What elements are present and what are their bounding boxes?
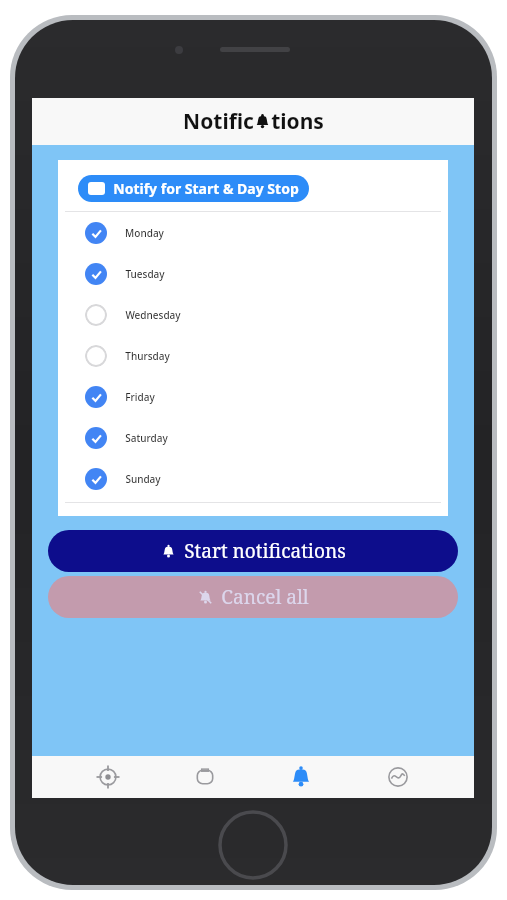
staticText: Sunday <box>125 472 161 486</box>
button[interactable]: Tuesday <box>58 253 448 294</box>
button[interactable]: Target <box>87 756 129 798</box>
button[interactable]: Thursday <box>58 335 448 376</box>
button[interactable]: Start notifications <box>48 530 458 572</box>
button[interactable]: Device <box>184 756 226 798</box>
staticText: Notific <box>183 107 254 136</box>
button[interactable]: Notify for Start & Day Stop <box>78 175 309 202</box>
staticText: tions <box>271 107 324 136</box>
button[interactable]: Monday <box>58 212 448 253</box>
button[interactable]: Friday <box>58 376 448 417</box>
button[interactable]: Activity <box>377 756 419 798</box>
staticText: Tuesday <box>125 267 165 281</box>
staticText: Monday <box>125 226 164 240</box>
staticText: Wednesday <box>125 308 181 322</box>
staticText: Saturday <box>125 431 168 445</box>
button[interactable]: Sunday <box>58 458 448 499</box>
staticText: Thursday <box>125 349 170 363</box>
button[interactable]: Cancel all <box>48 576 458 618</box>
button[interactable]: Notifications <box>280 756 322 798</box>
staticText: Start notifications <box>184 538 346 564</box>
button[interactable]: Wednesday <box>58 294 448 335</box>
staticText: Notify for Start & Day Stop <box>113 179 299 198</box>
staticText: Friday <box>125 390 155 404</box>
staticText: Cancel all <box>221 584 309 610</box>
button[interactable]: Saturday <box>58 417 448 458</box>
